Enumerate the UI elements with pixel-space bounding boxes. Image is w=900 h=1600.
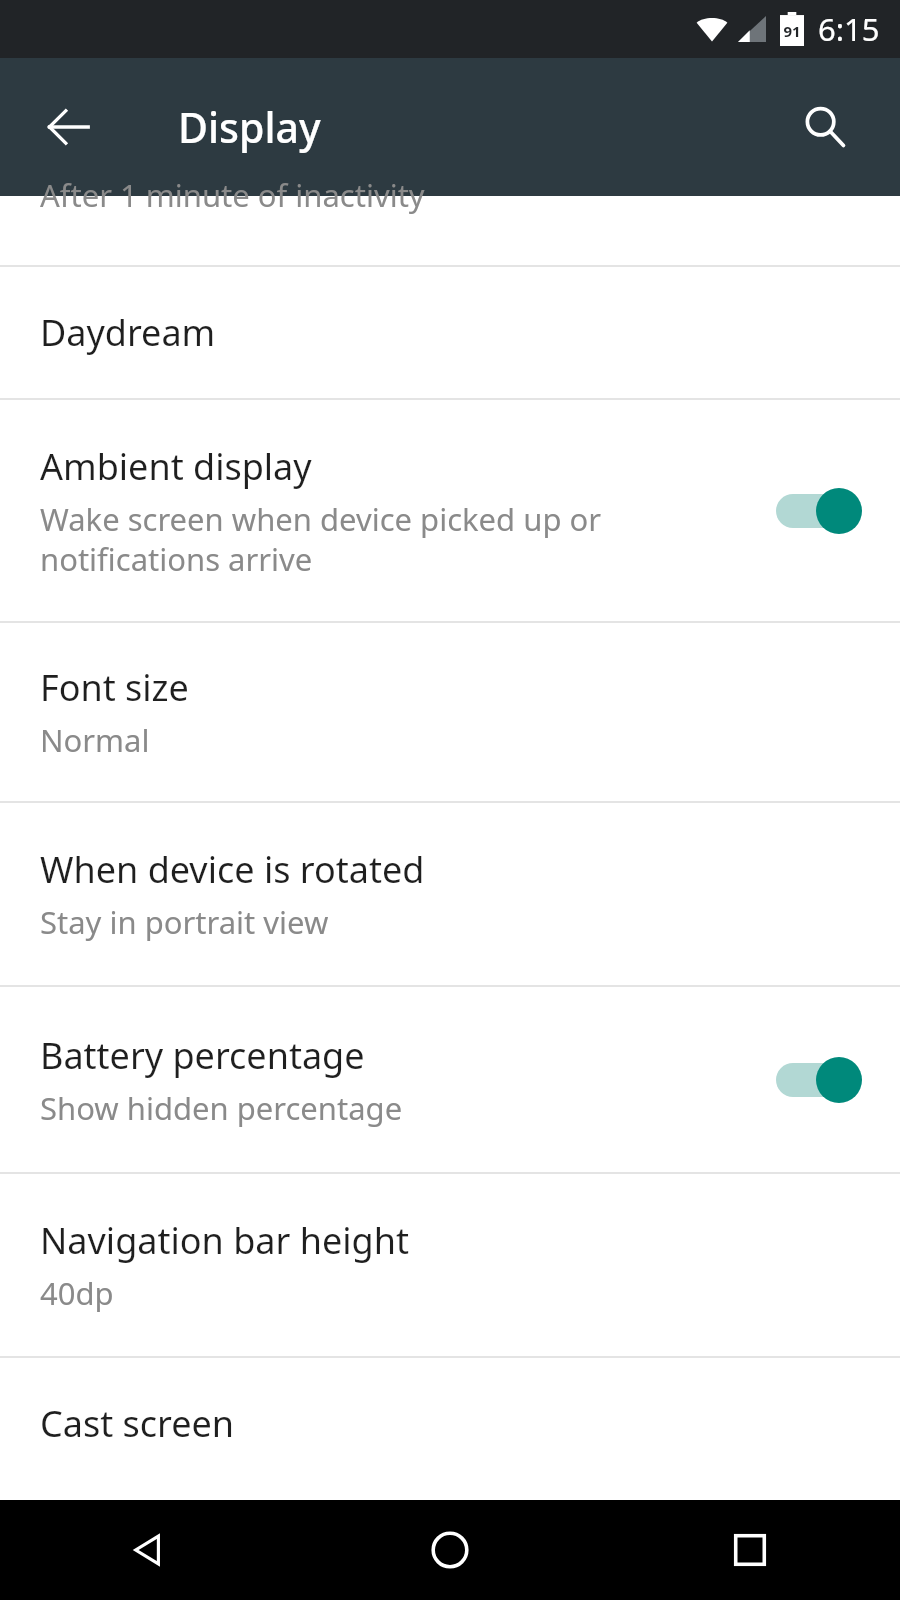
staticText: When device is rotated (40, 845, 425, 894)
staticText: Battery percentage (40, 1031, 365, 1080)
staticText: Wake screen when device picked up or not… (40, 498, 754, 580)
button[interactable]: Daydream (0, 267, 900, 398)
staticText: Font size (40, 663, 189, 712)
staticText: Navigation bar height (40, 1216, 409, 1265)
button[interactable]: Back (0, 1500, 300, 1600)
staticText: 6:15 (818, 8, 880, 50)
button[interactable]: Ambient display (0, 400, 900, 621)
button[interactable]: Toggle (770, 1044, 866, 1116)
button[interactable]: When device is rotated (0, 803, 900, 985)
staticText: Show hidden percentage (40, 1087, 403, 1129)
staticText: Cast screen (40, 1399, 235, 1448)
button[interactable]: Search (780, 82, 870, 172)
button[interactable]: Navigation bar height (0, 1174, 900, 1356)
staticText: 40dp (40, 1272, 114, 1314)
staticText: Daydream (40, 308, 216, 357)
staticText: Stay in portrait view (40, 901, 329, 943)
button[interactable]: Toggle (770, 475, 866, 547)
button[interactable]: Font size (0, 623, 900, 801)
button[interactable]: Cast screen (0, 1358, 900, 1489)
staticText: After 1 minute of inactivity (40, 174, 425, 216)
button[interactable]: Home (300, 1500, 600, 1600)
staticText: Display (178, 99, 321, 155)
staticText: Ambient display (40, 442, 312, 491)
staticText: Normal (40, 719, 150, 761)
button[interactable]: Battery percentage (0, 987, 900, 1172)
button[interactable]: Recent apps (600, 1500, 900, 1600)
button[interactable]: Back (18, 77, 118, 177)
staticText: 91 (783, 21, 801, 41)
